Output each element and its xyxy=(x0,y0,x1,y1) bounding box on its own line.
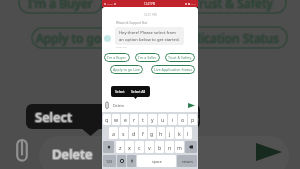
button[interactable]: Trust & Safety xyxy=(165,53,195,62)
staticText: Trust & Safety xyxy=(193,0,273,10)
button[interactable]: x xyxy=(125,141,134,153)
button[interactable]: return xyxy=(177,155,197,167)
button[interactable]: m xyxy=(175,141,184,153)
staticText: S xyxy=(191,109,199,127)
staticText: Airtel xyxy=(107,2,113,5)
button[interactable]: space xyxy=(137,155,176,167)
staticText: S xyxy=(191,107,199,125)
button[interactable]: a xyxy=(109,127,118,139)
button[interactable]: j xyxy=(166,127,174,139)
staticText: g xyxy=(150,130,154,137)
button[interactable]: g xyxy=(148,127,156,139)
button[interactable]: r xyxy=(130,114,138,125)
staticText: t xyxy=(142,116,144,123)
staticText: w xyxy=(114,116,119,123)
button[interactable] xyxy=(127,155,136,167)
staticText: Live Application Status xyxy=(150,30,280,46)
staticText: Trust & Safety xyxy=(168,55,192,60)
staticText: Apply to go Live xyxy=(35,29,127,45)
button[interactable]: w xyxy=(112,114,120,125)
staticText: m xyxy=(177,144,182,151)
staticText: Select xyxy=(34,107,71,125)
staticText: h xyxy=(159,130,163,137)
staticText: S xyxy=(190,108,198,126)
button[interactable]: c xyxy=(135,141,144,153)
staticText: Wizarcik Support Bot xyxy=(116,21,148,25)
staticText: c xyxy=(138,144,141,151)
button[interactable]: Send xyxy=(188,103,195,108)
button[interactable]: Live Application Status xyxy=(151,65,195,74)
staticText: I'm a Seller xyxy=(138,55,157,60)
button[interactable]: y xyxy=(148,114,157,125)
button[interactable]: z xyxy=(116,141,124,153)
staticText: Apply to go Live xyxy=(36,29,128,45)
staticText: Trust & Safety xyxy=(192,0,272,11)
button[interactable]: o xyxy=(178,114,187,125)
button[interactable]: Attach file xyxy=(105,102,109,109)
staticText: f xyxy=(142,130,144,137)
staticText: Delete xyxy=(52,144,93,162)
button[interactable]: p xyxy=(188,114,197,125)
button[interactable]: d xyxy=(129,127,138,139)
staticText: Select xyxy=(35,109,72,127)
button[interactable]: b xyxy=(155,141,164,153)
staticText: Apply to go Live xyxy=(37,31,129,47)
button[interactable]: i xyxy=(168,114,177,125)
button[interactable]: 123 xyxy=(103,155,116,167)
button[interactable]: q xyxy=(103,114,111,125)
button[interactable]: Apply to go Live xyxy=(110,65,143,74)
staticText: Select xyxy=(36,109,73,127)
staticText: Delete xyxy=(51,146,92,164)
staticText: Apply to go Live xyxy=(37,30,129,46)
staticText: Live Application Status xyxy=(148,30,278,46)
staticText: I'm a Buyer xyxy=(28,0,93,12)
staticText: Live Application Status xyxy=(150,29,280,45)
button[interactable]: e xyxy=(121,114,129,125)
staticText: Apply to go Live xyxy=(36,30,128,46)
staticText: Delete xyxy=(53,146,94,164)
button[interactable] xyxy=(117,155,126,167)
staticText: Select xyxy=(36,107,73,125)
staticText: Trust & Safety xyxy=(193,0,273,11)
button[interactable]: I'm a Seller xyxy=(135,53,160,62)
staticText: v xyxy=(148,144,151,151)
staticText: Delete xyxy=(113,103,124,108)
button[interactable]: u xyxy=(158,114,167,125)
staticText: Live Application Status xyxy=(149,30,279,46)
button[interactable] xyxy=(103,141,114,153)
staticText: k xyxy=(178,130,181,137)
staticText: Select xyxy=(34,109,71,127)
staticText: S xyxy=(190,109,198,127)
staticText: Apply to go Live xyxy=(36,31,128,47)
staticText: Select xyxy=(34,108,71,126)
button[interactable]: l xyxy=(184,127,192,139)
button[interactable]: s xyxy=(119,127,128,139)
staticText: q xyxy=(105,116,109,123)
staticText: Trust & Safety xyxy=(194,0,274,11)
staticText: I'm a Buyer xyxy=(27,0,92,10)
staticText: I'm a Buyer xyxy=(28,0,93,11)
staticText: Select xyxy=(115,89,125,94)
button[interactable]: n xyxy=(165,141,174,153)
staticText: Delete xyxy=(51,144,92,162)
button[interactable]: t xyxy=(139,114,147,125)
button[interactable]: h xyxy=(157,127,165,139)
staticText: Trust & Safety xyxy=(193,0,273,12)
button[interactable]: f xyxy=(139,127,147,139)
staticText: Select xyxy=(35,108,72,126)
button[interactable]: k xyxy=(175,127,183,139)
staticText: Live Application Status xyxy=(150,31,280,47)
staticText: Apply to go Live xyxy=(35,31,127,47)
staticText: I'm a Buyer xyxy=(27,0,92,12)
staticText: s xyxy=(122,130,125,137)
button[interactable]: I'm a Buyer xyxy=(104,53,130,62)
button[interactable]: v xyxy=(145,141,154,153)
staticText: Delete xyxy=(53,144,94,162)
staticText: I'm a Buyer xyxy=(29,0,94,10)
button[interactable] xyxy=(185,141,197,153)
staticText: Select xyxy=(36,108,73,126)
staticText: 12:21 PM xyxy=(102,13,198,17)
staticText: u xyxy=(161,116,165,123)
staticText: Live Application Status xyxy=(154,67,192,72)
staticText: Apply to go Live xyxy=(37,29,129,45)
